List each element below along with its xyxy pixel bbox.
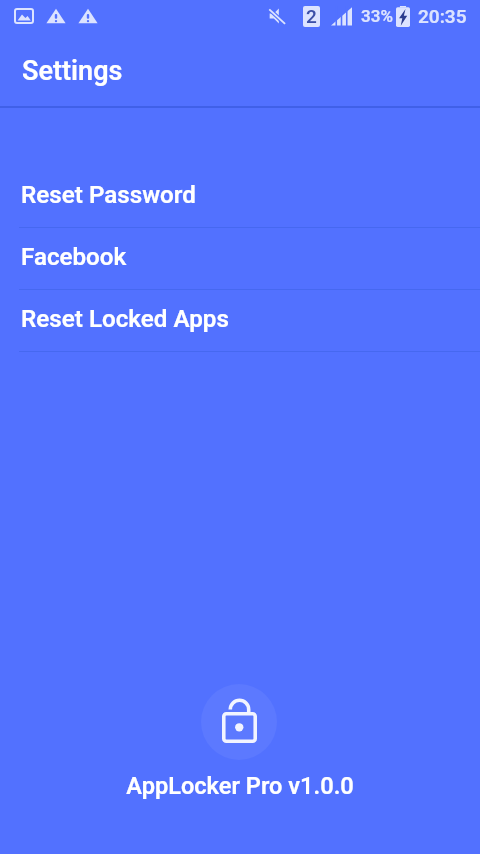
staticText: Reset Locked Apps — [21, 305, 229, 333]
button[interactable]: Reset Locked Apps — [0, 290, 480, 352]
staticText: Facebook — [21, 243, 127, 271]
button[interactable]: Reset Password — [0, 166, 480, 228]
staticText: 33% — [361, 6, 393, 26]
button[interactable]: Facebook — [0, 228, 480, 290]
staticText: Settings — [22, 55, 123, 87]
staticText: Reset Password — [21, 181, 196, 209]
button[interactable]: AppLocker logo — [201, 684, 277, 760]
staticText: AppLocker Pro v1.0.0 — [0, 772, 480, 800]
staticText: 20:35 — [418, 5, 467, 27]
staticText: 2 — [306, 5, 317, 26]
